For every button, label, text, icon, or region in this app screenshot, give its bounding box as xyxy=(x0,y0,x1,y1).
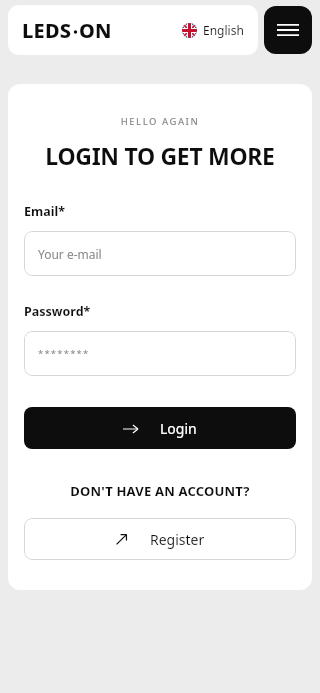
button[interactable]: Register xyxy=(24,518,296,560)
staticText: DON'T HAVE AN ACCOUNT? xyxy=(24,482,296,500)
staticText: Password* xyxy=(24,303,91,320)
staticText: Your e-mail xyxy=(38,246,102,262)
staticText: Email* xyxy=(24,203,65,220)
button[interactable]: Password field xyxy=(24,331,296,376)
button[interactable]: Email field xyxy=(24,231,296,276)
staticText: LEDS xyxy=(22,17,72,44)
button[interactable]: Login xyxy=(24,407,296,449)
staticText: Login xyxy=(160,419,197,438)
staticText: Register xyxy=(150,530,205,549)
staticText: HELLO AGAIN xyxy=(24,115,296,128)
button[interactable]: English xyxy=(176,16,250,44)
staticText: LOGIN TO GET MORE xyxy=(24,140,296,171)
staticText: ******** xyxy=(38,347,90,360)
staticText: English xyxy=(203,22,244,38)
staticText: ON xyxy=(79,17,112,44)
button[interactable]: Open menu xyxy=(264,6,312,54)
